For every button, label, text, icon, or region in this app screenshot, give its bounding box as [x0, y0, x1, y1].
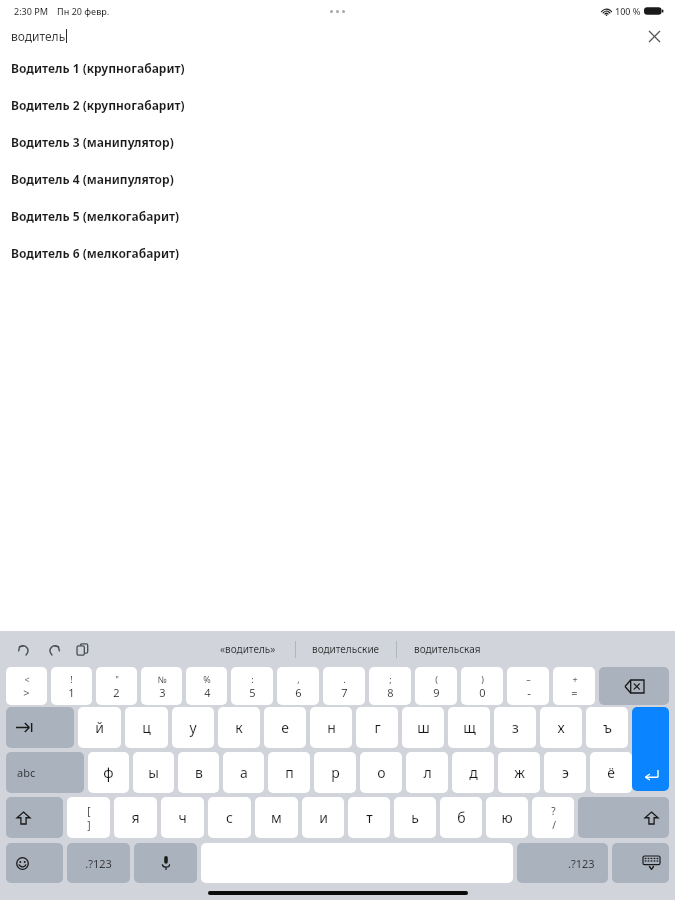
staticText: б: [457, 808, 466, 827]
button[interactable]: г: [356, 707, 398, 748]
button[interactable]: ф: [88, 752, 129, 793]
staticText: 9: [433, 685, 440, 700]
button[interactable]: №: [141, 667, 182, 705]
button[interactable]: т: [348, 797, 390, 838]
button[interactable]: Shift: [6, 797, 63, 838]
button[interactable]: водительская: [397, 634, 497, 664]
staticText: у: [189, 718, 197, 737]
button[interactable]: е: [264, 707, 306, 748]
button[interactable]: ": [96, 667, 137, 705]
staticText: а: [240, 763, 248, 782]
button[interactable]: ъ: [586, 707, 628, 748]
button[interactable]: ы: [133, 752, 174, 793]
button[interactable]: Enter: [632, 707, 669, 791]
staticText: л: [423, 763, 432, 782]
button[interactable]: (: [415, 667, 457, 705]
staticText: ,: [297, 673, 300, 685]
button[interactable]: о: [360, 752, 402, 793]
button[interactable]: Shift: [578, 797, 669, 838]
button[interactable]: д: [452, 752, 494, 793]
button[interactable]: Emoji: [6, 843, 63, 883]
button[interactable]: Hide keyboard: [612, 843, 669, 883]
button[interactable]: ?: [532, 797, 574, 838]
button[interactable]: .?123: [517, 843, 608, 883]
button[interactable]: ь: [394, 797, 436, 838]
button[interactable]: Clear text: [641, 23, 667, 49]
button[interactable]: м: [255, 797, 298, 838]
button[interactable]: х: [540, 707, 582, 748]
staticText: ъ: [603, 718, 612, 737]
button[interactable]: ,: [277, 667, 319, 705]
button[interactable]: водительские: [296, 634, 396, 664]
staticText: п: [285, 763, 294, 782]
button[interactable]: в: [178, 752, 219, 793]
staticText: /: [552, 818, 556, 832]
button[interactable]: Водитель 1 (крупногабарит): [0, 49, 675, 86]
button[interactable]: Водитель 6 (мелкогабарит): [0, 234, 675, 271]
button[interactable]: Водитель 4 (манипулятор): [0, 160, 675, 197]
button[interactable]: ): [461, 667, 503, 705]
button[interactable]: Paste: [70, 637, 94, 661]
staticText: Водитель 2 (крупногабарит): [11, 97, 185, 113]
staticText: 4: [204, 685, 211, 700]
button[interactable]: у: [172, 707, 214, 748]
button[interactable]: ч: [161, 797, 204, 838]
staticText: «водитель»: [220, 642, 276, 656]
button[interactable]: Водитель 3 (манипулятор): [0, 123, 675, 160]
staticText: –: [526, 673, 531, 685]
staticText: я: [131, 808, 140, 827]
staticText: №: [157, 673, 167, 685]
staticText: .?123: [568, 856, 595, 871]
button[interactable]: «водитель»: [200, 634, 295, 664]
staticText: 3: [159, 685, 166, 700]
button[interactable]: э: [544, 752, 586, 793]
button[interactable]: .: [323, 667, 365, 705]
staticText: ж: [514, 763, 525, 782]
button[interactable]: <: [6, 667, 47, 705]
button[interactable]: Tab: [6, 707, 74, 748]
button[interactable]: ж: [498, 752, 540, 793]
button[interactable]: а: [223, 752, 264, 793]
button[interactable]: щ: [448, 707, 490, 748]
button[interactable]: б: [440, 797, 482, 838]
button[interactable]: л: [406, 752, 448, 793]
button[interactable]: Backspace: [599, 667, 669, 705]
button[interactable]: ;: [369, 667, 411, 705]
button[interactable]: [: [67, 797, 110, 838]
staticText: ]: [87, 818, 91, 832]
button[interactable]: к: [218, 707, 260, 748]
staticText: ч: [178, 808, 187, 827]
staticText: к: [235, 718, 243, 737]
button[interactable]: р: [314, 752, 356, 793]
staticText: щ: [463, 718, 476, 737]
button[interactable]: .?123: [67, 843, 130, 883]
button[interactable]: Undo: [12, 637, 36, 661]
button[interactable]: ё: [590, 752, 632, 793]
button[interactable]: :: [231, 667, 273, 705]
staticText: ы: [148, 763, 159, 782]
button[interactable]: з: [494, 707, 536, 748]
button[interactable]: н: [310, 707, 352, 748]
staticText: 2:30 PM: [14, 5, 48, 17]
staticText: ш: [417, 718, 430, 737]
button[interactable]: и: [302, 797, 344, 838]
button[interactable]: %: [186, 667, 227, 705]
button[interactable]: abc: [6, 752, 84, 793]
button[interactable]: Водитель 5 (мелкогабарит): [0, 197, 675, 234]
button[interactable]: я: [114, 797, 157, 838]
button[interactable]: –: [507, 667, 549, 705]
button[interactable]: с: [208, 797, 251, 838]
staticText: о: [377, 763, 386, 782]
button[interactable]: Водитель 2 (крупногабарит): [0, 86, 675, 123]
button[interactable]: +: [553, 667, 595, 705]
button[interactable]: ц: [125, 707, 168, 748]
button[interactable]: Voice input: [134, 843, 197, 883]
button[interactable]: ю: [486, 797, 528, 838]
button[interactable]: й: [78, 707, 121, 748]
button[interactable]: !: [51, 667, 92, 705]
button[interactable]: п: [268, 752, 310, 793]
button[interactable]: ш: [402, 707, 444, 748]
staticText: э: [562, 763, 569, 782]
button[interactable]: Redo: [41, 637, 65, 661]
